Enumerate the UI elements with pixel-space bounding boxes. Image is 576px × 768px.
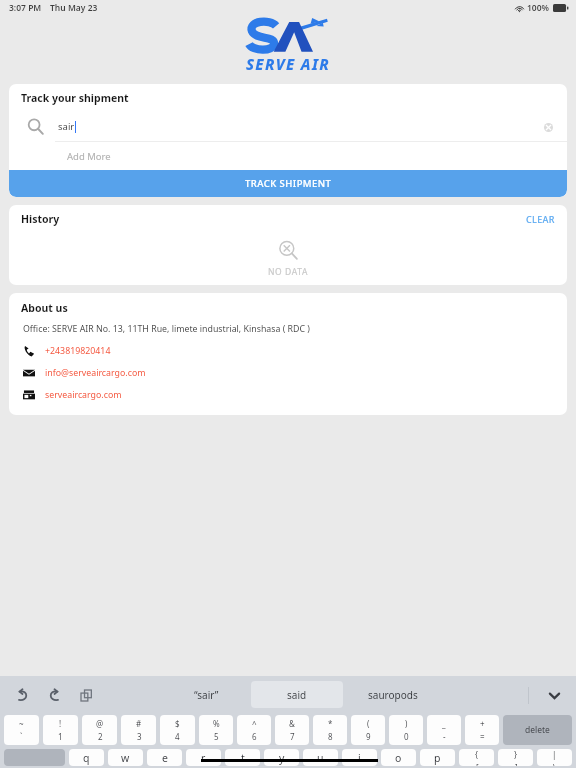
staticText: 3 — [137, 731, 142, 742]
staticText: serveaircargo.com — [45, 389, 122, 401]
button[interactable]: Clear text — [537, 116, 559, 138]
button[interactable]: Call — [9, 340, 567, 362]
staticText: i — [358, 751, 361, 765]
button[interactable]: t — [225, 749, 260, 766]
staticText: Office: SERVE AIR No. 13, 11TH Rue, lime… — [23, 323, 310, 335]
button[interactable]: ~ — [4, 715, 39, 745]
staticText: History — [21, 212, 60, 226]
button[interactable]: u — [303, 749, 338, 766]
button[interactable]: { — [459, 749, 494, 766]
staticText: _ — [442, 718, 446, 729]
staticText: @ — [96, 718, 104, 729]
button[interactable]: & — [275, 715, 309, 745]
staticText: sauropods — [368, 688, 418, 702]
staticText: q — [83, 751, 90, 765]
staticText: * — [328, 718, 333, 729]
staticText: ~ — [19, 718, 24, 729]
staticText: $ — [175, 718, 180, 729]
button[interactable]: _ — [427, 715, 461, 745]
staticText: e — [162, 751, 168, 765]
button[interactable]: ^ — [237, 715, 271, 745]
staticText: Add More — [67, 150, 111, 163]
staticText: sair — [58, 120, 75, 133]
staticText: # — [136, 718, 142, 729]
button[interactable]: * — [313, 715, 347, 745]
button[interactable]: Search — [9, 112, 567, 141]
staticText: w — [121, 751, 130, 765]
staticText: said — [287, 688, 307, 702]
staticText: \ — [553, 762, 556, 766]
staticText: o — [395, 751, 402, 765]
staticText: 7 — [290, 731, 295, 742]
button[interactable]: TRACK SHIPMENT — [9, 170, 567, 197]
staticText: delete — [525, 724, 550, 736]
staticText: & — [289, 718, 295, 729]
button[interactable]: ! — [43, 715, 78, 745]
button[interactable]: Redo — [42, 683, 66, 707]
staticText: CLEAR — [526, 213, 555, 225]
staticText: NO DATA — [268, 266, 308, 278]
button[interactable]: w — [108, 749, 143, 766]
button[interactable]: Hide keyboard — [542, 683, 566, 707]
other: Email — [23, 367, 35, 379]
staticText: r — [201, 751, 206, 765]
button[interactable]: @ — [82, 715, 117, 745]
button[interactable]: + — [465, 715, 499, 745]
staticText: 3:07 PM — [9, 2, 42, 14]
staticText: TRACK SHIPMENT — [245, 177, 332, 190]
button[interactable]: sauropods — [343, 682, 443, 708]
staticText: 1 — [58, 731, 63, 742]
staticText: ^ — [252, 718, 257, 729]
staticText: ] — [515, 762, 518, 766]
staticText: t — [241, 751, 245, 765]
staticText: ` — [20, 731, 23, 742]
button[interactable]: y — [264, 749, 299, 766]
staticText: { — [475, 749, 479, 760]
button[interactable]: i — [342, 749, 377, 766]
button[interactable]: Email — [9, 362, 567, 384]
staticText: u — [317, 751, 324, 765]
button[interactable]: CLEAR — [514, 208, 567, 230]
staticText: ( — [367, 718, 370, 729]
staticText: y — [279, 751, 285, 765]
button[interactable]: “sair” — [161, 682, 251, 708]
button[interactable]: # — [121, 715, 156, 745]
button[interactable]: Website — [9, 384, 567, 406]
staticText: % — [213, 718, 220, 729]
button[interactable]: o — [381, 749, 416, 766]
button[interactable]: said — [251, 681, 343, 708]
staticText: ) — [405, 718, 408, 729]
button[interactable]: % — [199, 715, 233, 745]
button[interactable]: Paste — [74, 683, 98, 707]
button[interactable]: ) — [389, 715, 423, 745]
button[interactable]: | — [537, 749, 572, 766]
button[interactable]: e — [147, 749, 182, 766]
button[interactable]: q — [69, 749, 104, 766]
staticText: } — [514, 749, 518, 760]
staticText: 5 — [214, 731, 219, 742]
button[interactable]: Undo — [10, 683, 34, 707]
button[interactable]: ( — [351, 715, 385, 745]
button[interactable]: Add More — [9, 142, 567, 170]
button[interactable]: r — [186, 749, 221, 766]
button[interactable]: $ — [160, 715, 195, 745]
button[interactable]: delete — [503, 715, 572, 745]
button[interactable] — [4, 749, 65, 766]
staticText: [ — [476, 762, 479, 766]
staticText: 6 — [252, 731, 257, 742]
staticText: 2 — [98, 731, 103, 742]
button[interactable]: } — [498, 749, 533, 766]
staticText: = — [480, 731, 485, 742]
staticText: About us — [21, 301, 68, 315]
staticText: - — [443, 731, 446, 742]
staticText: 100% — [527, 2, 550, 14]
staticText: “sair” — [194, 688, 219, 702]
staticText: 0 — [404, 731, 409, 742]
other: Website — [23, 389, 35, 401]
staticText: SERVE AIR — [246, 54, 331, 74]
staticText: + — [480, 718, 485, 729]
staticText: Track your shipment — [21, 91, 129, 105]
staticText: 8 — [328, 731, 333, 742]
other: Search — [27, 118, 44, 135]
button[interactable]: p — [420, 749, 455, 766]
